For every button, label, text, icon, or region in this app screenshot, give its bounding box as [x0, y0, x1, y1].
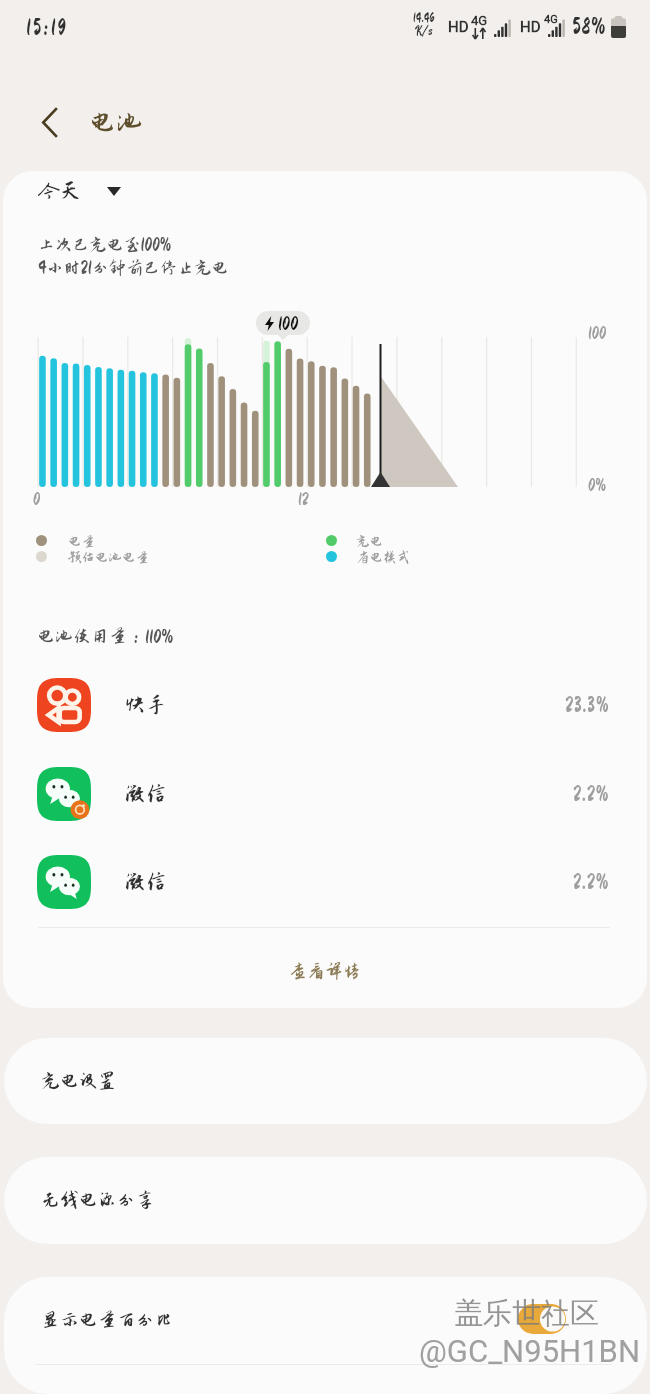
button[interactable]: 快手: [3, 661, 647, 749]
staticText: 15:19: [26, 16, 68, 39]
staticText: 0%: [588, 476, 606, 494]
staticText: 预估电池电量: [68, 550, 150, 565]
staticText: 今天: [38, 179, 82, 203]
staticText: 充电设置: [41, 1071, 117, 1092]
staticText: 23.3%: [565, 695, 610, 716]
button[interactable]: Back: [26, 99, 72, 145]
staticText: 显示电量百分比: [41, 1310, 174, 1331]
staticText: 电池使用量：110%: [37, 626, 174, 646]
staticText: 0: [33, 490, 41, 508]
button[interactable]: 显示电量百分比: [4, 1277, 647, 1394]
button[interactable]: 微信: [3, 750, 647, 838]
staticText: 4G: [471, 13, 488, 28]
staticText: 100: [588, 324, 607, 342]
staticText: 4G: [544, 13, 558, 26]
staticText: 充电: [356, 534, 384, 549]
staticText: 查看详情: [289, 961, 361, 981]
button[interactable]: 无线电源分享: [4, 1157, 647, 1244]
staticText: 4小时21分钟前已停止充电: [38, 258, 229, 277]
staticText: 电量: [68, 534, 96, 549]
staticText: 微信: [124, 870, 168, 894]
staticText: HD: [520, 18, 541, 36]
staticText: 上次已充电至100%: [38, 235, 172, 254]
staticText: 省电模式: [356, 550, 411, 565]
staticText: 2.2%: [573, 872, 610, 893]
staticText: 无线电源分享: [41, 1190, 155, 1211]
button[interactable]: 今天: [34, 176, 125, 206]
button[interactable]: 微信: [3, 838, 647, 926]
staticText: 电池: [89, 108, 143, 138]
staticText: 12: [298, 490, 309, 508]
button[interactable]: 充电设置: [4, 1038, 647, 1124]
staticText: 微信: [124, 782, 168, 806]
staticText: @GC_N95H1BN: [419, 1333, 641, 1369]
button[interactable]: 查看详情: [3, 935, 647, 1007]
staticText: 2.2%: [573, 784, 610, 805]
staticText: 14.46: [413, 12, 435, 25]
staticText: 58%: [572, 14, 606, 38]
staticText: K/s: [415, 25, 433, 38]
staticText: 快手: [124, 693, 168, 717]
staticText: 100: [278, 313, 299, 333]
staticText: HD: [448, 18, 469, 36]
staticText: 盖乐世社区: [454, 1295, 599, 1332]
